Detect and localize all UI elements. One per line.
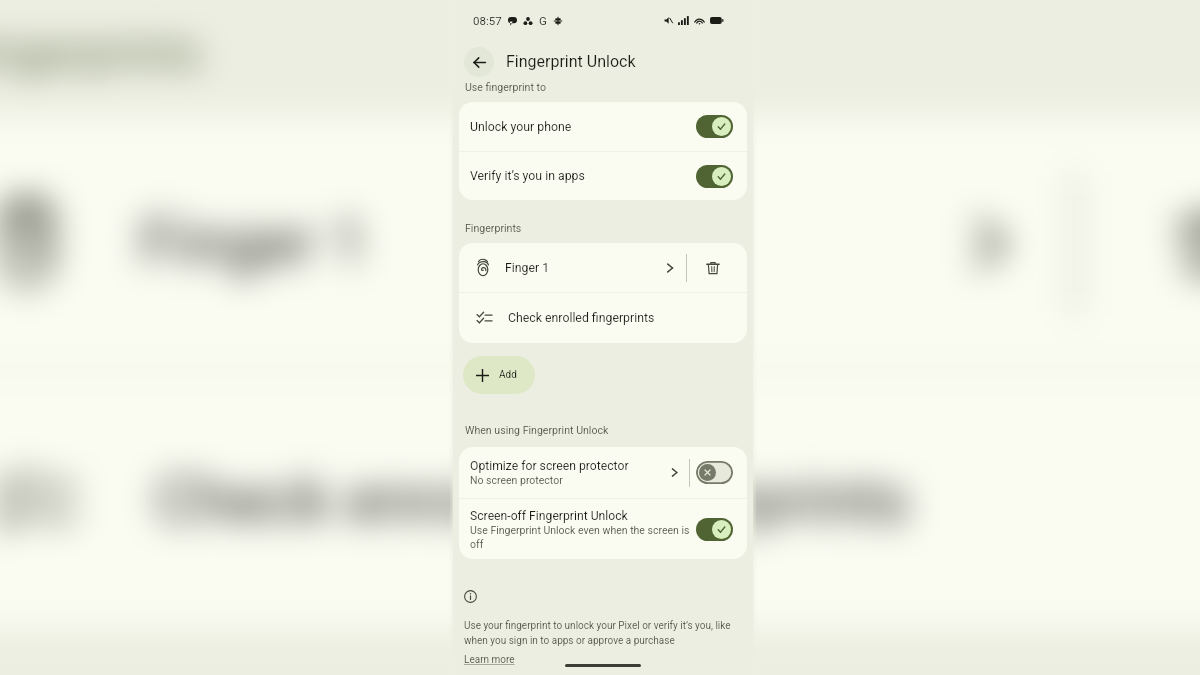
staticText: Unlock your phone (470, 120, 696, 134)
button[interactable]: Add (463, 356, 535, 394)
button[interactable]: Delete fingerprint (1077, 115, 1200, 367)
staticText: Check enrolled fingerprints (156, 465, 913, 537)
button[interactable]: Optimize for screen protector (459, 447, 689, 498)
staticText: No screen protector (470, 474, 563, 486)
staticText: Use Fingerprint Unlock even when the scr… (470, 524, 692, 550)
staticText: G (539, 14, 547, 27)
button[interactable]: Toggle on (696, 518, 733, 541)
button[interactable]: Toggle on (696, 165, 733, 188)
button[interactable]: Verify it’s you in apps (459, 152, 747, 200)
staticText: Finger 1 (505, 261, 550, 275)
button[interactable]: Check enrolled fingerprints (0, 372, 1200, 630)
button[interactable]: Unlock your phone (459, 102, 747, 151)
staticText: Use your fingerprint to unlock your Pixe… (464, 620, 742, 646)
staticText: Screen-off Fingerprint Unlock (470, 509, 628, 523)
staticText: 08:57 (473, 14, 502, 27)
button[interactable]: Back (464, 47, 494, 77)
staticText: Finger 1 (140, 208, 372, 280)
staticText: Fingerprints (465, 222, 522, 234)
button[interactable]: Check enrolled fingerprints (459, 293, 747, 343)
staticText: Learn more (464, 654, 515, 666)
staticText: Fingerprint Unlock (506, 52, 636, 71)
button[interactable]: Finger 1 (0, 115, 1072, 367)
staticText: Verify it’s you in apps (470, 169, 696, 183)
staticText: Fingerprints (0, 27, 202, 84)
staticText: Check enrolled fingerprints (508, 311, 655, 325)
button[interactable]: Delete fingerprint (687, 243, 747, 292)
button[interactable]: Learn more (464, 654, 515, 666)
staticText: Optimize for screen protector (470, 459, 629, 473)
staticText: Use fingerprint to (465, 81, 546, 93)
staticText: Add (499, 369, 517, 381)
staticText: When using Fingerprint Unlock (465, 424, 609, 436)
button[interactable]: Toggle off (696, 461, 733, 484)
button[interactable]: Finger 1 (459, 243, 686, 292)
button[interactable]: Screen-off Fingerprint Unlock (459, 499, 747, 559)
button[interactable]: Toggle on (696, 115, 733, 138)
